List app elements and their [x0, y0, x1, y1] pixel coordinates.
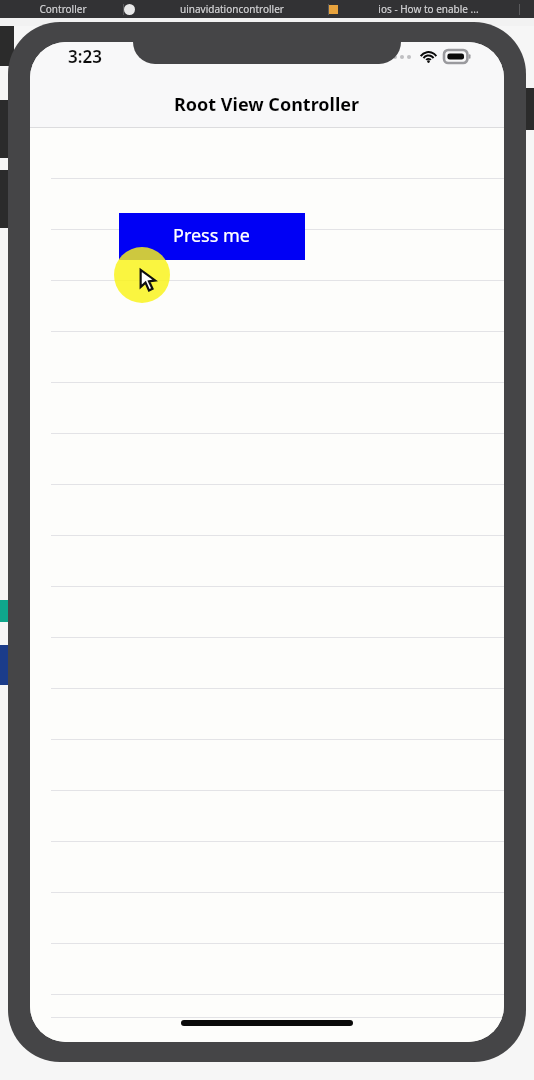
button[interactable]: ios - How to enable ...: [338, 0, 519, 18]
button[interactable]: [30, 842, 504, 893]
button[interactable]: [30, 179, 504, 230]
button[interactable]: [30, 485, 504, 536]
staticText: 3:23: [68, 45, 102, 68]
staticText: uinavidationcontroller: [180, 2, 284, 16]
button[interactable]: [30, 128, 504, 179]
staticText: Press me: [173, 223, 251, 248]
button[interactable]: [30, 587, 504, 638]
button[interactable]: [30, 383, 504, 434]
button[interactable]: [30, 536, 504, 587]
button[interactable]: [30, 944, 504, 995]
other: Battery full: [444, 50, 470, 63]
button[interactable]: [30, 230, 504, 281]
button[interactable]: [30, 689, 504, 740]
staticText: Root View Controller: [174, 92, 360, 117]
button[interactable]: uinavidationcontroller: [135, 0, 328, 18]
button[interactable]: [30, 893, 504, 944]
button[interactable]: [30, 638, 504, 689]
other: Wi-Fi: [420, 48, 437, 65]
button[interactable]: [30, 434, 504, 485]
button[interactable]: [30, 740, 504, 791]
button[interactable]: [30, 791, 504, 842]
staticText: ios - How to enable ...: [378, 2, 479, 16]
button[interactable]: [30, 995, 504, 1018]
button[interactable]: Press me: [119, 213, 305, 260]
button[interactable]: [30, 281, 504, 332]
button[interactable]: Controller: [2, 0, 123, 18]
staticText: Controller: [39, 2, 87, 16]
button[interactable]: [30, 332, 504, 383]
